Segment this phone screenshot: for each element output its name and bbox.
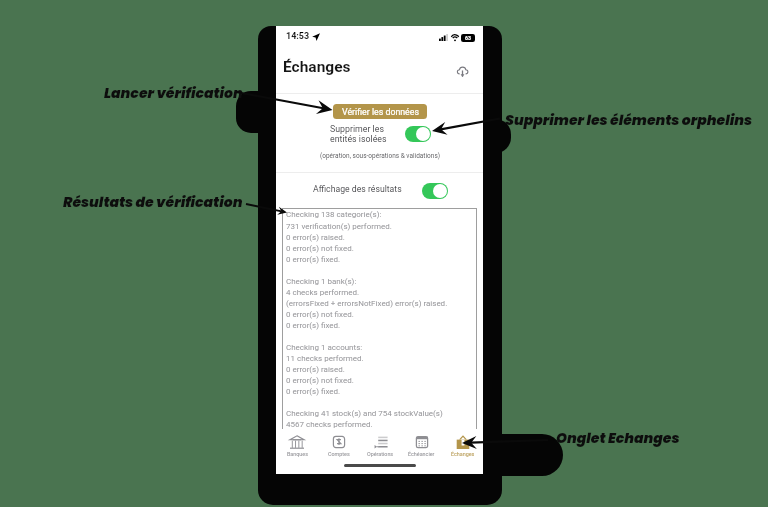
staticText: (opération, sous-opérations & validation…: [320, 152, 440, 160]
staticText: Comptes: [328, 451, 350, 457]
button[interactable]: Échéancier: [401, 435, 442, 457]
button[interactable]: Activé: [422, 183, 448, 199]
button[interactable]: Opérations: [360, 435, 401, 457]
button[interactable]: Télécharger: [452, 61, 472, 81]
staticText: Supprimer les éléments orphelins: [505, 110, 753, 130]
staticText: Supprimer les entités isolées: [330, 124, 387, 144]
button[interactable]: Comptes: [318, 435, 360, 457]
staticText: Échéancier: [408, 451, 435, 457]
staticText: 14:53: [286, 31, 310, 42]
staticText: Échanges: [451, 451, 475, 457]
button[interactable]: Activé: [405, 126, 431, 142]
staticText: Échanges: [283, 58, 351, 76]
button[interactable]: Vérifier les données: [333, 104, 427, 119]
staticText: Onglet Echanges: [556, 428, 680, 448]
staticText: Affichage des résultats: [313, 184, 402, 194]
staticText: Checking 138 categorie(s): 731 verificat…: [286, 210, 448, 429]
staticText: Lancer vérification: [104, 83, 243, 103]
staticText: Opérations: [367, 451, 394, 457]
staticText: Vérifier les données: [342, 107, 419, 117]
staticText: Banques: [287, 451, 308, 457]
button[interactable]: Échanges: [442, 435, 483, 457]
button[interactable]: Banques: [276, 435, 318, 457]
staticText: 63: [465, 35, 471, 41]
staticText: Résultats de vérification: [63, 192, 243, 212]
